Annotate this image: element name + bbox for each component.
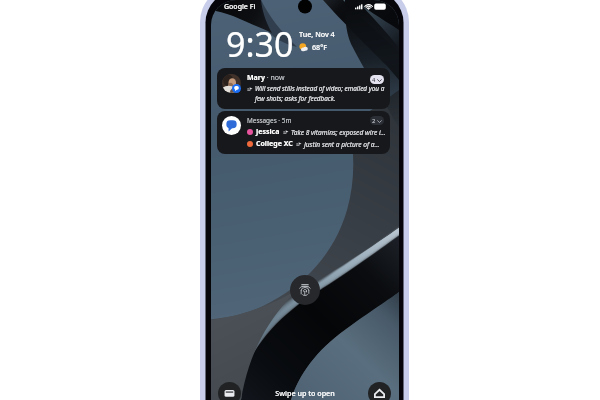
button[interactable]: Unlock with fingerprint [290, 275, 320, 305]
staticText: Take 8 vitamins; exposed wire i... [291, 128, 386, 137]
staticText: Tue, Nov 4 [299, 29, 335, 39]
button[interactable]: Expand notification group [370, 116, 384, 125]
staticText: Jessica [256, 127, 280, 137]
staticText: · now [265, 73, 285, 83]
button[interactable]: Expand notification [370, 75, 384, 84]
button[interactable]: Wallet [218, 382, 241, 400]
staticText: Mary [247, 73, 265, 83]
staticText: 2 [372, 117, 376, 125]
staticText: 9:30 [226, 21, 294, 67]
staticText: 68°F [312, 42, 328, 52]
staticText: Google Fi [224, 2, 256, 12]
staticText: Justin sent a picture of a... [304, 140, 380, 149]
staticText: 4 [372, 76, 376, 84]
staticText: Messages · 5m [247, 116, 292, 125]
button[interactable]: Home controls [368, 382, 391, 400]
staticText: Swipe up to open [275, 388, 335, 398]
staticText: College XC [256, 139, 293, 149]
staticText: Will send stills instead of video; email… [255, 84, 388, 103]
button[interactable]: Messages · 5m [217, 111, 390, 154]
button[interactable]: Mary [217, 68, 390, 109]
